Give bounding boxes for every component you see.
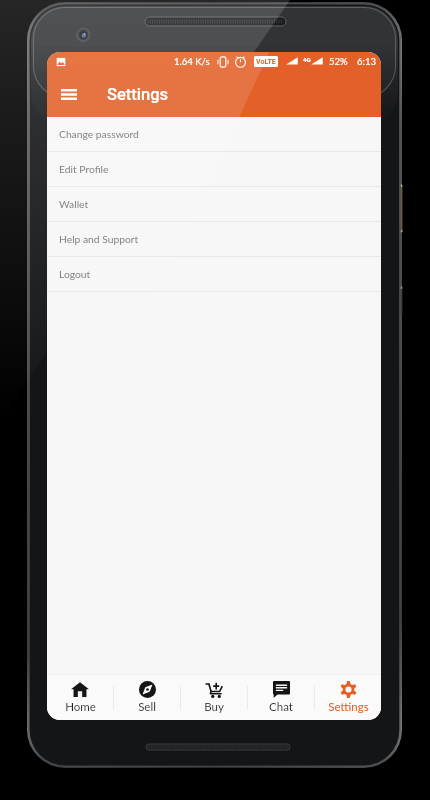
button[interactable]: Buy bbox=[181, 675, 247, 720]
staticText: Sell bbox=[138, 700, 156, 714]
staticText: Home bbox=[65, 700, 96, 714]
button[interactable]: Settings bbox=[315, 675, 381, 720]
button[interactable]: Open navigation menu bbox=[53, 78, 85, 110]
staticText: VoLTE bbox=[256, 58, 276, 66]
button[interactable]: Chat bbox=[248, 675, 314, 720]
staticText: 6:13 bbox=[357, 56, 376, 67]
staticText: Logout bbox=[59, 268, 91, 280]
staticText: Settings bbox=[107, 85, 169, 104]
button[interactable]: Wallet bbox=[47, 187, 381, 221]
staticText: 52% bbox=[329, 56, 348, 67]
staticText: Wallet bbox=[59, 198, 89, 210]
staticText: 4G bbox=[303, 56, 311, 63]
staticText: Settings bbox=[328, 700, 369, 714]
button[interactable]: Help and Support bbox=[47, 222, 381, 256]
button[interactable]: Logout bbox=[47, 257, 381, 291]
staticText: Buy bbox=[204, 700, 224, 714]
button[interactable]: Home bbox=[47, 675, 113, 720]
staticText: Help and Support bbox=[59, 233, 139, 245]
button[interactable]: Edit Profile bbox=[47, 152, 381, 186]
staticText: Edit Profile bbox=[59, 163, 109, 175]
staticText: Change password bbox=[59, 128, 139, 140]
staticText: Chat bbox=[269, 700, 293, 714]
button[interactable]: Sell bbox=[114, 675, 180, 720]
button[interactable]: Change password bbox=[47, 117, 381, 151]
staticText: 1.64 K/s bbox=[174, 56, 210, 67]
